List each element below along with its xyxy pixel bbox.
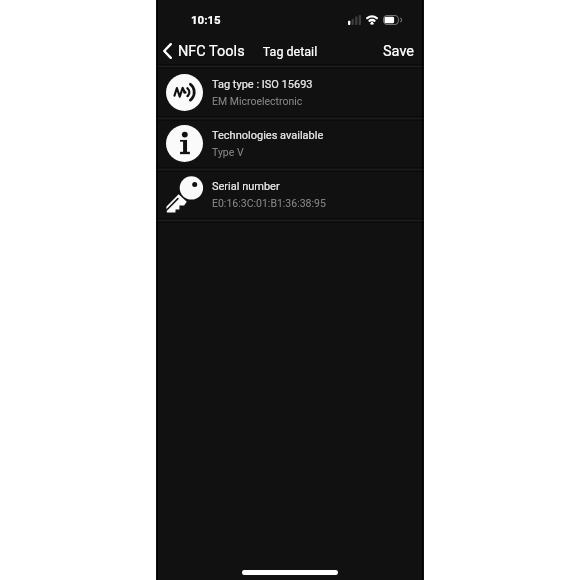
staticText: NFC Tools — [178, 43, 245, 60]
button[interactable]: NFC tag type — [156, 67, 424, 118]
staticText: EM Microelectronic — [212, 95, 303, 107]
staticText: Tag detail — [156, 44, 424, 59]
other: NFC tag type — [166, 74, 203, 111]
button[interactable]: Serial number — [156, 169, 424, 220]
other: Serial number — [166, 176, 204, 214]
staticText: Serial number — [212, 180, 280, 193]
staticText: 10:15 — [191, 13, 221, 26]
staticText: Technologies available — [212, 129, 324, 142]
button[interactable]: Technologies available — [156, 118, 424, 169]
button[interactable]: NFC Tools — [161, 40, 228, 57]
staticText: Tag type : ISO 15693 — [212, 78, 313, 91]
other: Technologies available — [166, 125, 203, 162]
staticText: Save — [383, 43, 415, 60]
staticText: Type V — [212, 146, 244, 158]
staticText: E0:16:3C:01:B1:36:38:95 — [212, 197, 326, 209]
button[interactable]: Save — [372, 41, 426, 62]
